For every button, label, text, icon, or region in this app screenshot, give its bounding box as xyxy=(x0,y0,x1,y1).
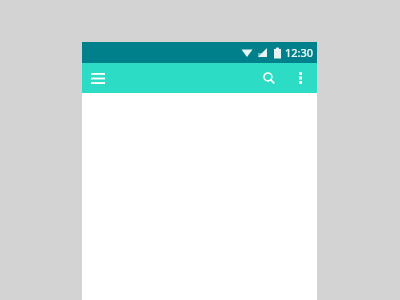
button[interactable]: Open navigation drawer xyxy=(85,65,111,91)
button[interactable]: Search xyxy=(256,65,282,91)
button[interactable]: More options xyxy=(287,65,313,91)
staticText: 12:30 xyxy=(285,45,314,60)
